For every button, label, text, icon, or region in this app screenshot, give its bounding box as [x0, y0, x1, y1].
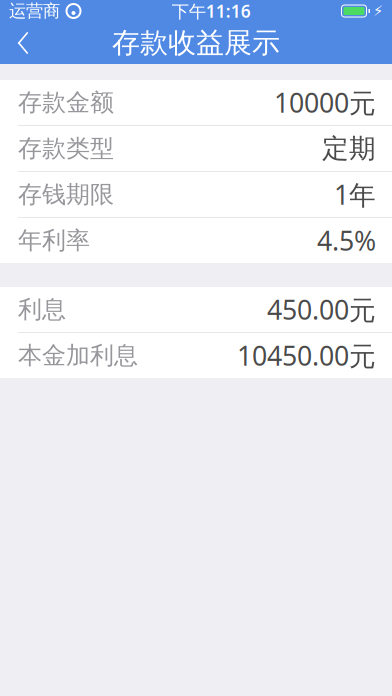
staticText: 运营商 — [9, 0, 60, 22]
button[interactable]: 利息 — [0, 287, 392, 332]
staticText: ⚡︎ — [373, 3, 383, 19]
button[interactable]: 本金加利息 — [0, 333, 392, 378]
staticText: 450.00元 — [267, 292, 376, 327]
staticText: 存款金额 — [18, 88, 114, 117]
staticText: 年利率 — [18, 226, 90, 255]
button[interactable]: 存款类型 — [0, 126, 392, 171]
staticText: 下午11:16 — [172, 0, 251, 22]
button[interactable]: 存钱期限 — [0, 172, 392, 217]
button[interactable]: 存款金额 — [0, 80, 392, 125]
staticText: 本金加利息 — [18, 341, 138, 370]
staticText: 存款类型 — [18, 134, 114, 163]
staticText: 4.5% — [317, 223, 376, 258]
staticText: 利息 — [18, 295, 66, 324]
staticText: 1年 — [334, 177, 376, 212]
staticText: 存款收益展示 — [112, 26, 280, 60]
staticText: 存钱期限 — [18, 180, 114, 209]
staticText: 10450.00元 — [237, 338, 376, 373]
button[interactable]: 年利率 — [0, 218, 392, 263]
staticText: 定期 — [322, 132, 376, 165]
button[interactable]: 返回 — [0, 22, 46, 64]
staticText: 10000元 — [274, 85, 376, 120]
